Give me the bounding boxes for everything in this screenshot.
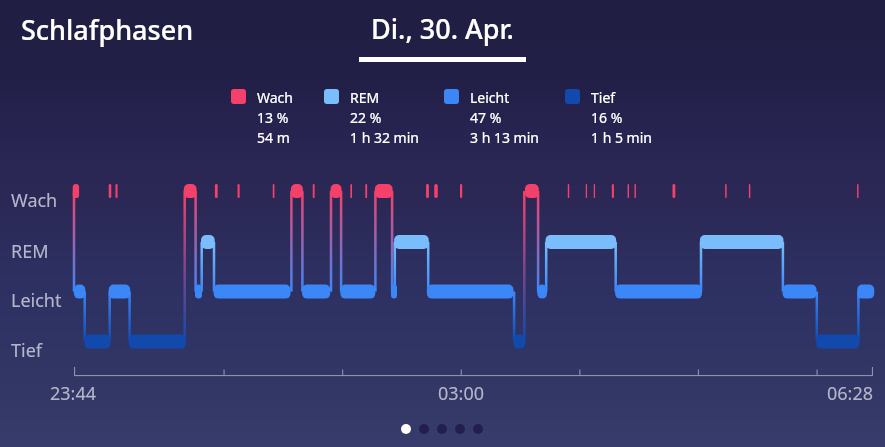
staticText: 54 m <box>257 128 290 147</box>
staticText: Wach <box>257 88 293 107</box>
staticText: 1 h 32 min <box>350 128 419 147</box>
button[interactable]: Di., 30. Apr. <box>359 10 526 62</box>
button[interactable]: REM <box>324 88 419 147</box>
staticText: 23:44 <box>50 381 97 406</box>
button[interactable]: Tief <box>565 88 652 147</box>
staticText: REM <box>11 239 49 264</box>
staticText: 03:00 <box>438 381 485 406</box>
staticText: Wach <box>11 188 58 213</box>
staticText: Di., 30. Apr. <box>359 10 526 47</box>
staticText: Leicht <box>470 88 510 107</box>
staticText: 06:28 <box>827 381 874 406</box>
staticText: 22 % <box>350 108 382 127</box>
staticText: Leicht <box>11 288 62 313</box>
button[interactable]: Page 5 <box>473 424 483 434</box>
button[interactable]: Leicht <box>444 88 539 147</box>
button[interactable]: Page 4 <box>455 424 465 434</box>
staticText: 13 % <box>257 108 289 127</box>
staticText: Tief <box>591 88 616 107</box>
staticText: 16 % <box>591 108 623 127</box>
staticText: Tief <box>11 338 42 363</box>
staticText: 47 % <box>470 108 502 127</box>
button[interactable]: Page 2 <box>419 424 429 434</box>
staticText: 3 h 13 min <box>470 128 539 147</box>
button[interactable]: Page 3 <box>437 424 447 434</box>
staticText: REM <box>350 88 380 107</box>
staticText: 1 h 5 min <box>591 128 652 147</box>
button[interactable]: Wach <box>231 88 293 147</box>
button[interactable]: Page 1 <box>401 424 411 434</box>
button[interactable]: Schlafphasen <box>21 11 194 48</box>
